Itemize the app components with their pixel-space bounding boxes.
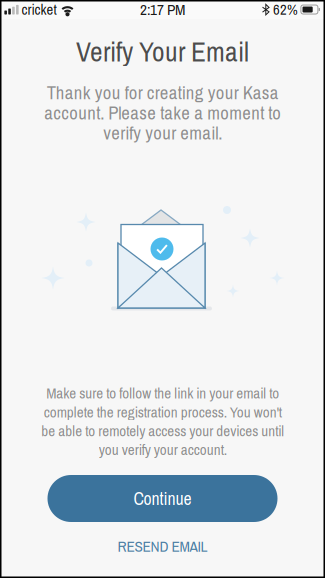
staticText: Continue [133, 487, 191, 510]
staticText: Thank you for creating your Kasa account… [44, 80, 281, 145]
staticText: cricket [21, 0, 56, 19]
button[interactable]: Continue [47, 475, 277, 522]
staticText: Verify Your Email [76, 33, 249, 70]
staticText: RESEND EMAIL [117, 536, 207, 557]
staticText: Make sure to follow the link in your ema… [41, 383, 284, 460]
staticText: 2:17 PM [140, 0, 185, 20]
button[interactable]: RESEND EMAIL [99, 529, 225, 564]
staticText: 62% [273, 0, 298, 19]
